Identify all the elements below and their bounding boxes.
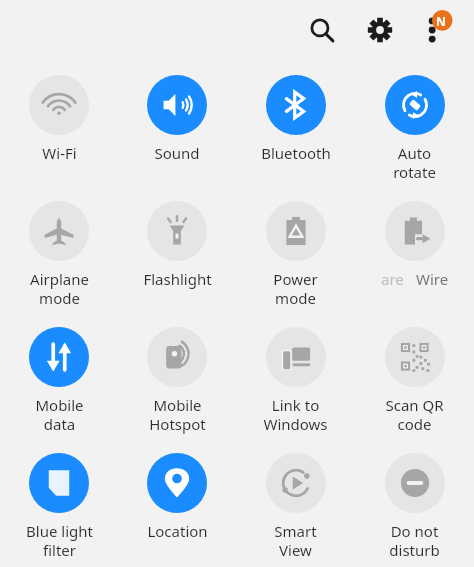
staticText: Auto rotate xyxy=(393,143,436,182)
staticText: Airplane mode xyxy=(30,269,89,308)
staticText: Link to Windows xyxy=(263,395,328,434)
staticText: Location xyxy=(147,521,208,541)
button[interactable]: Wi-Fi xyxy=(0,60,118,186)
button[interactable]: Scan QR code xyxy=(355,312,474,438)
button[interactable]: Airplane mode xyxy=(0,186,118,312)
staticText: Wire xyxy=(416,269,449,289)
staticText: Blue light filter xyxy=(26,521,93,560)
staticText: Wi-Fi xyxy=(42,143,77,163)
button[interactable]: Mobile Hotspot xyxy=(118,312,236,438)
button[interactable]: Settings xyxy=(358,8,402,52)
button[interactable]: Link to Windows xyxy=(236,312,355,438)
staticText: Sound xyxy=(154,143,200,163)
button[interactable]: Auto rotate xyxy=(355,60,474,186)
button[interactable]: Smart View xyxy=(236,438,355,564)
staticText: Smart View xyxy=(274,521,317,560)
staticText: Bluetooth xyxy=(261,143,331,163)
staticText: are xyxy=(381,269,404,289)
button[interactable]: Do not disturb xyxy=(355,438,474,564)
button[interactable]: Blue light filter xyxy=(0,438,118,564)
button[interactable]: Bluetooth xyxy=(236,60,355,186)
staticText: Mobile data xyxy=(35,395,84,434)
button[interactable]: Flashlight xyxy=(118,186,236,312)
staticText: Do not disturb xyxy=(389,521,440,560)
staticText: Flashlight xyxy=(143,269,212,289)
staticText: Mobile Hotspot xyxy=(149,395,206,434)
button[interactable]: Wireless PowerShare xyxy=(355,186,474,312)
staticText: Scan QR code xyxy=(385,395,444,434)
button[interactable]: Mobile data xyxy=(0,312,118,438)
button[interactable]: Search xyxy=(300,8,344,52)
staticText: N xyxy=(436,13,446,29)
button[interactable]: Power mode xyxy=(236,186,355,312)
staticText: Power mode xyxy=(273,269,318,308)
button[interactable]: Location xyxy=(118,438,236,564)
button[interactable]: Sound xyxy=(118,60,236,186)
button[interactable]: More options xyxy=(412,6,460,54)
